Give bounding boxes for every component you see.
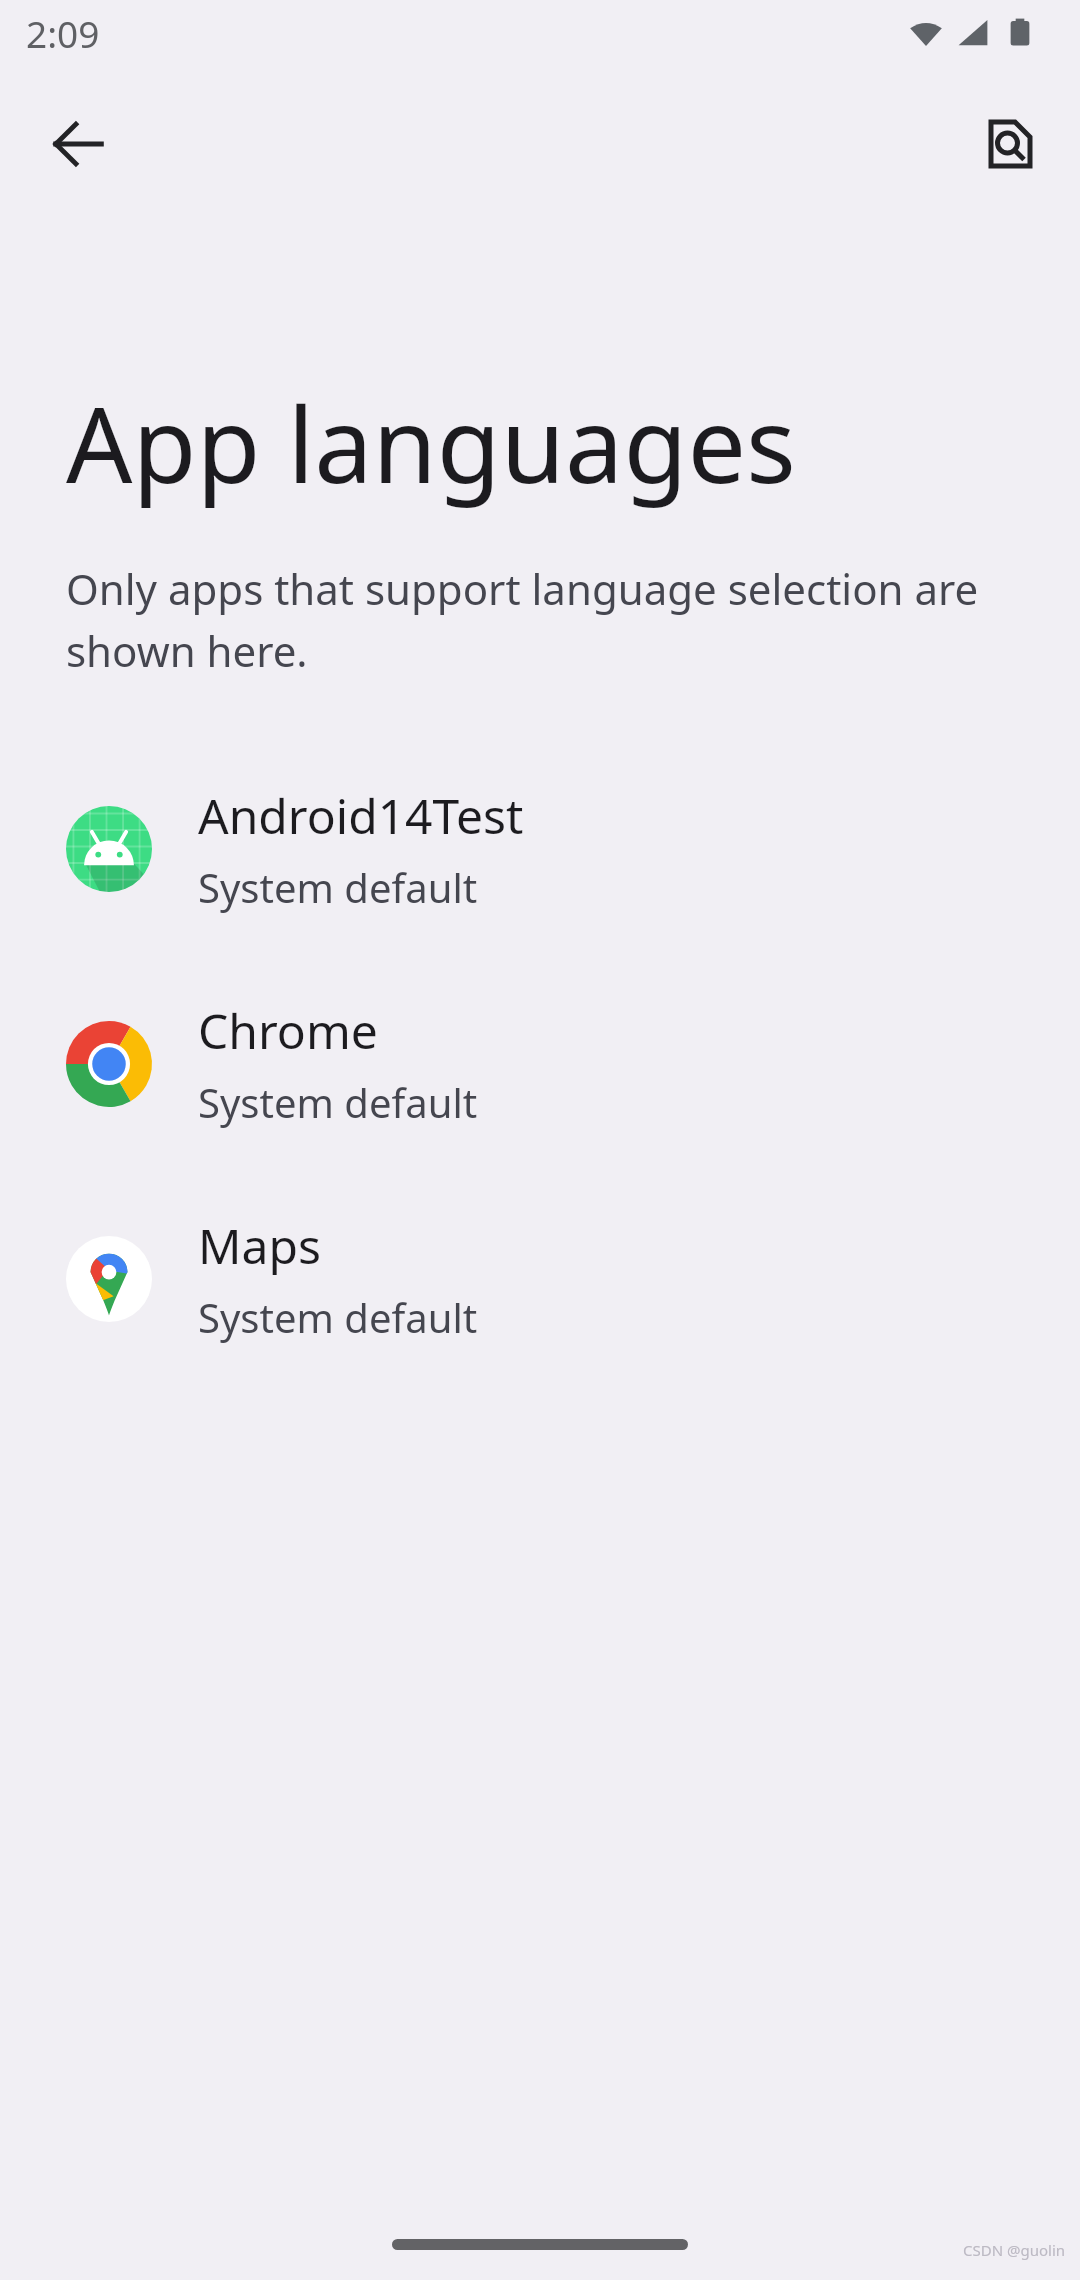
- staticText: 2:09: [26, 8, 100, 58]
- staticText: Chrome: [198, 998, 378, 1063]
- staticText: Android14Test: [198, 783, 524, 848]
- staticText: System default: [198, 1290, 478, 1344]
- button[interactable]: Maps: [0, 1171, 1080, 1386]
- staticText: System default: [198, 1075, 478, 1129]
- button[interactable]: Back: [30, 96, 126, 192]
- button[interactable]: Search in page: [962, 96, 1058, 192]
- staticText: CSDN @guolin: [963, 2240, 1066, 2260]
- button[interactable]: Chrome: [0, 956, 1080, 1171]
- staticText: System default: [198, 860, 478, 914]
- button[interactable]: Android14Test: [0, 741, 1080, 956]
- staticText: Maps: [198, 1213, 321, 1278]
- staticText: App languages: [66, 372, 796, 514]
- staticText: Only apps that support language selectio…: [66, 560, 1006, 679]
